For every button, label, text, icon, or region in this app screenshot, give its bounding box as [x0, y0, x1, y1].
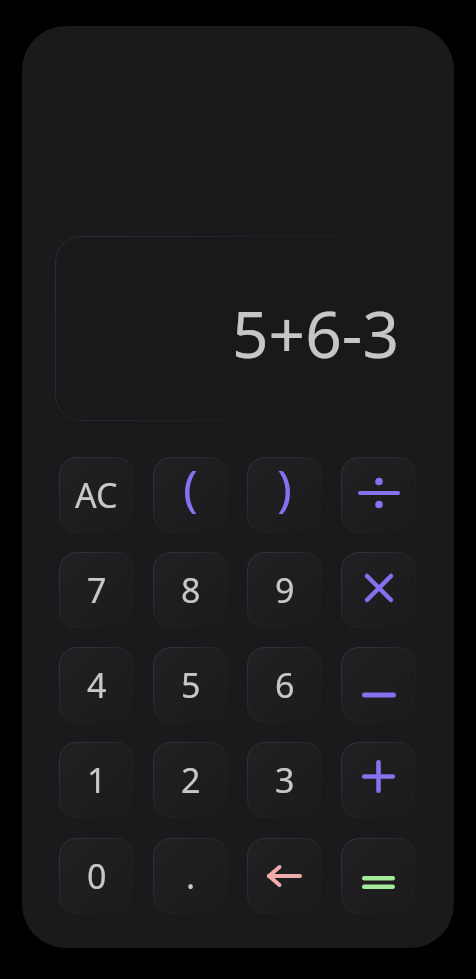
button[interactable]	[341, 552, 416, 628]
button[interactable]: 7	[59, 552, 134, 628]
button[interactable]: 9	[247, 552, 322, 628]
button[interactable]: 1	[59, 742, 134, 818]
button[interactable]: 3	[247, 742, 322, 818]
button[interactable]: )	[247, 457, 322, 533]
button[interactable]: 0	[59, 838, 134, 914]
button[interactable]: 6	[247, 647, 322, 723]
button[interactable]: (	[153, 457, 228, 533]
button[interactable]	[247, 838, 322, 914]
button[interactable]: AC	[59, 457, 134, 533]
button[interactable]: .	[153, 838, 228, 914]
staticText: 4	[87, 662, 107, 708]
button[interactable]	[341, 457, 416, 533]
button[interactable]: 4	[59, 647, 134, 723]
button[interactable]	[341, 647, 416, 723]
staticText: 3	[275, 757, 295, 803]
staticText: 0	[87, 853, 107, 899]
button[interactable]	[341, 742, 416, 818]
staticText: 5+6-3	[232, 290, 400, 377]
button[interactable]	[341, 838, 416, 914]
staticText: 6	[275, 662, 295, 708]
staticText: 8	[181, 567, 201, 613]
staticText: 5	[181, 662, 201, 708]
button[interactable]: 2	[153, 742, 228, 818]
staticText: 1	[87, 757, 107, 803]
staticText: 9	[275, 567, 295, 613]
staticText: 2	[181, 757, 201, 803]
staticText: 7	[87, 567, 107, 613]
button[interactable]: 8	[153, 552, 228, 628]
button[interactable]: 5	[153, 647, 228, 723]
staticText: AC	[75, 472, 118, 518]
staticText: )	[277, 457, 292, 521]
staticText: .	[186, 853, 196, 899]
staticText: (	[183, 457, 198, 521]
